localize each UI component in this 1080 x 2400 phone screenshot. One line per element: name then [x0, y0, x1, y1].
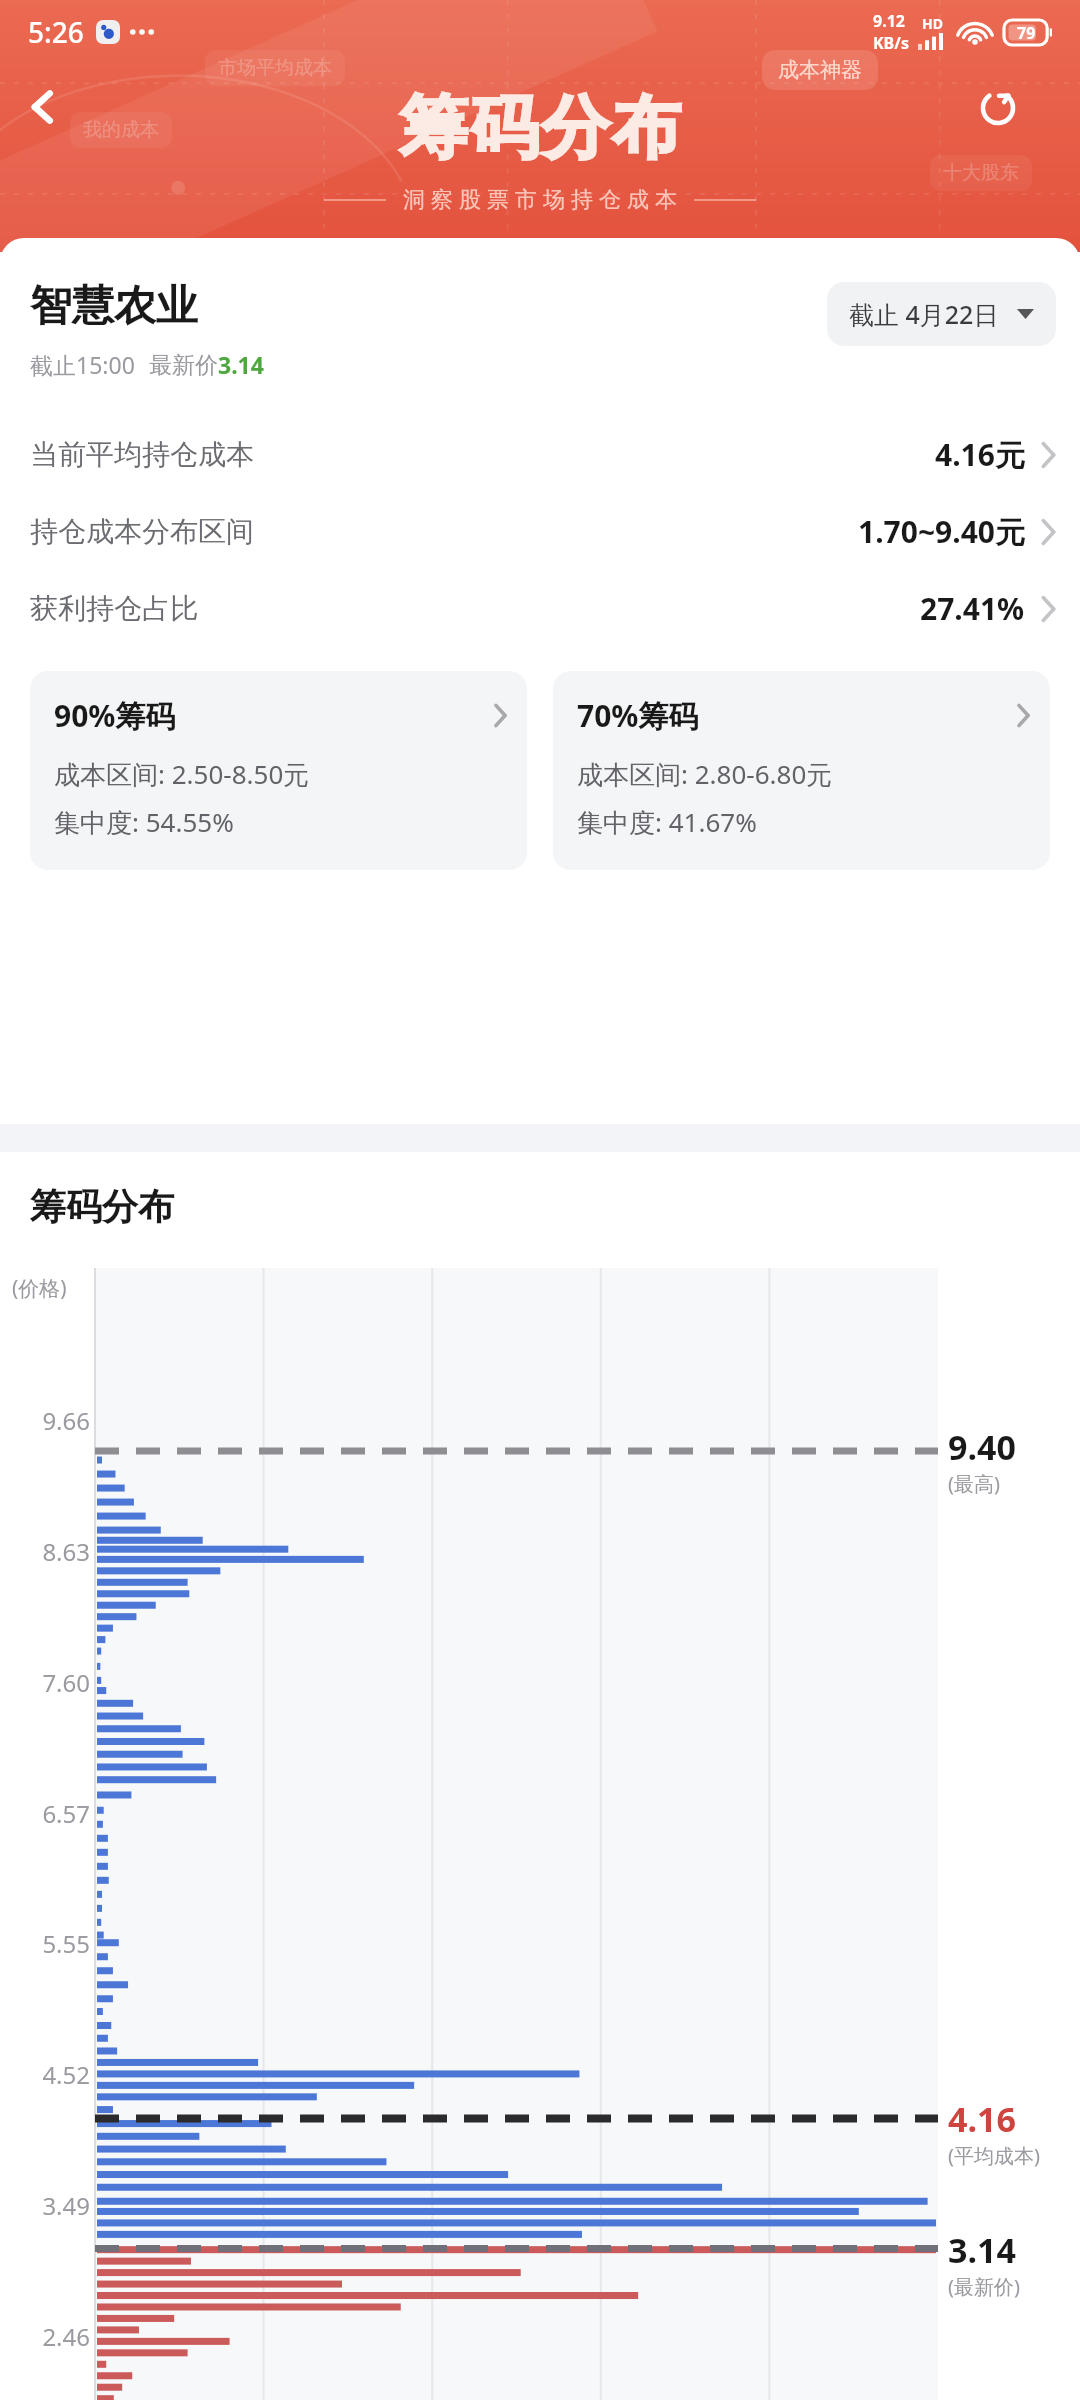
button[interactable]: Back — [10, 74, 76, 140]
staticText: (最高) — [948, 1470, 1000, 1497]
staticText: (最新价) — [948, 2273, 1020, 2300]
staticText: 9.66 — [6, 1404, 90, 1437]
staticText: 9.40 — [948, 1424, 1016, 1470]
button[interactable]: 获利持仓占比 — [30, 570, 1056, 647]
staticText: (平均成本) — [948, 2142, 1040, 2169]
staticText: 5.55 — [6, 1927, 90, 1960]
button[interactable]: 截止 4月22日 — [827, 282, 1056, 346]
staticText: 市场平均成本 — [218, 56, 332, 80]
staticText: HD — [922, 14, 943, 33]
staticText: 79 — [1017, 22, 1036, 44]
staticText: 获利持仓占比 — [30, 591, 920, 626]
staticText: 70%筹码 — [577, 695, 1017, 736]
staticText: 90%筹码 — [54, 695, 494, 736]
staticText: 成本区间: 2.50-8.50元 — [54, 756, 310, 792]
staticText: 1.70~9.40元 — [858, 511, 1025, 552]
staticText: 4.52 — [6, 2058, 90, 2091]
staticText: 集中度: 54.55% — [54, 804, 234, 840]
staticText: 智慧农业 — [30, 280, 198, 333]
staticText: 截止 4月22日 — [849, 297, 999, 331]
staticText: 筹码分布 — [398, 86, 682, 172]
staticText: KB/s — [873, 32, 909, 54]
staticText: 3.14 — [218, 349, 264, 380]
staticText: 截止15:00 — [30, 349, 135, 380]
staticText: 4.16 — [948, 2096, 1016, 2142]
staticText: 2.46 — [6, 2320, 90, 2353]
button[interactable]: Refresh — [966, 76, 1030, 140]
staticText: 6.57 — [6, 1797, 90, 1830]
button[interactable]: 当前平均持仓成本 — [30, 416, 1056, 493]
staticText: 洞察股票市场持仓成本 — [400, 186, 680, 214]
button[interactable]: 70%筹码 — [553, 671, 1050, 870]
staticText: 筹码分布 — [30, 1184, 174, 1229]
button[interactable]: 90%筹码 — [30, 671, 527, 870]
staticText: 4.16元 — [935, 434, 1025, 475]
staticText: 3.14 — [948, 2227, 1016, 2273]
staticText: 7.60 — [6, 1666, 90, 1699]
staticText: 持仓成本分布区间 — [30, 514, 858, 549]
staticText: 集中度: 41.67% — [577, 804, 757, 840]
staticText: 我的成本 — [83, 118, 159, 142]
button[interactable]: 成本神器 — [762, 50, 878, 90]
staticText: 十大股东 — [943, 161, 1019, 185]
staticText: 8.63 — [6, 1535, 90, 1568]
staticText: 最新价 — [149, 351, 218, 380]
button[interactable]: 持仓成本分布区间 — [30, 493, 1056, 570]
staticText: 成本区间: 2.80-6.80元 — [577, 756, 833, 792]
staticText: 成本神器 — [778, 57, 862, 83]
staticText: 当前平均持仓成本 — [30, 437, 935, 472]
staticText: (价格) — [12, 1274, 67, 1303]
staticText: 9.12 — [873, 10, 905, 32]
staticText: 27.41% — [920, 588, 1025, 629]
staticText: 5:26 — [28, 13, 84, 51]
staticText: 3.49 — [6, 2189, 90, 2222]
